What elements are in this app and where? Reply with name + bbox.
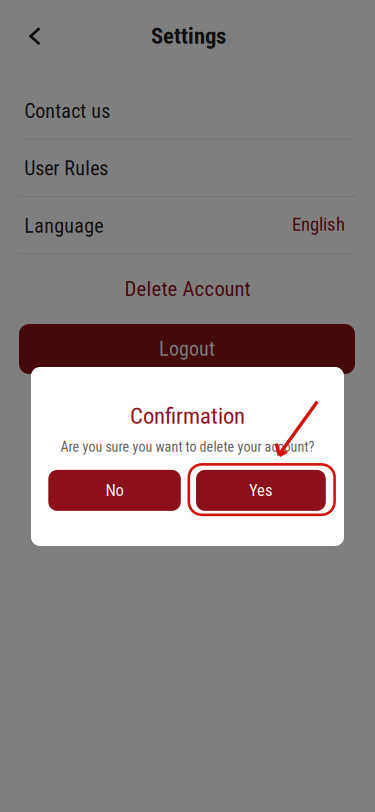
staticText: Confirmation: [130, 403, 245, 429]
staticText: Logout: [159, 337, 215, 361]
button[interactable]: Logout: [19, 324, 355, 374]
staticText: User Rules: [24, 157, 108, 180]
staticText: No: [105, 481, 123, 500]
button[interactable]: Delete Account: [0, 265, 375, 313]
staticText: Settings: [151, 23, 226, 49]
button[interactable]: Back: [13, 14, 57, 58]
staticText: Delete Account: [124, 277, 250, 301]
button[interactable]: Yes: [196, 470, 326, 511]
staticText: Contact us: [24, 99, 110, 123]
button[interactable]: No: [48, 470, 181, 511]
staticText: Yes: [249, 481, 273, 500]
staticText: English: [292, 213, 345, 235]
button[interactable]: Language: [0, 197, 375, 254]
staticText: Language: [24, 214, 103, 238]
staticText: Are you sure you want to delete your acc…: [60, 439, 314, 455]
button[interactable]: Contact us: [0, 82, 375, 140]
button[interactable]: User Rules: [0, 140, 375, 197]
